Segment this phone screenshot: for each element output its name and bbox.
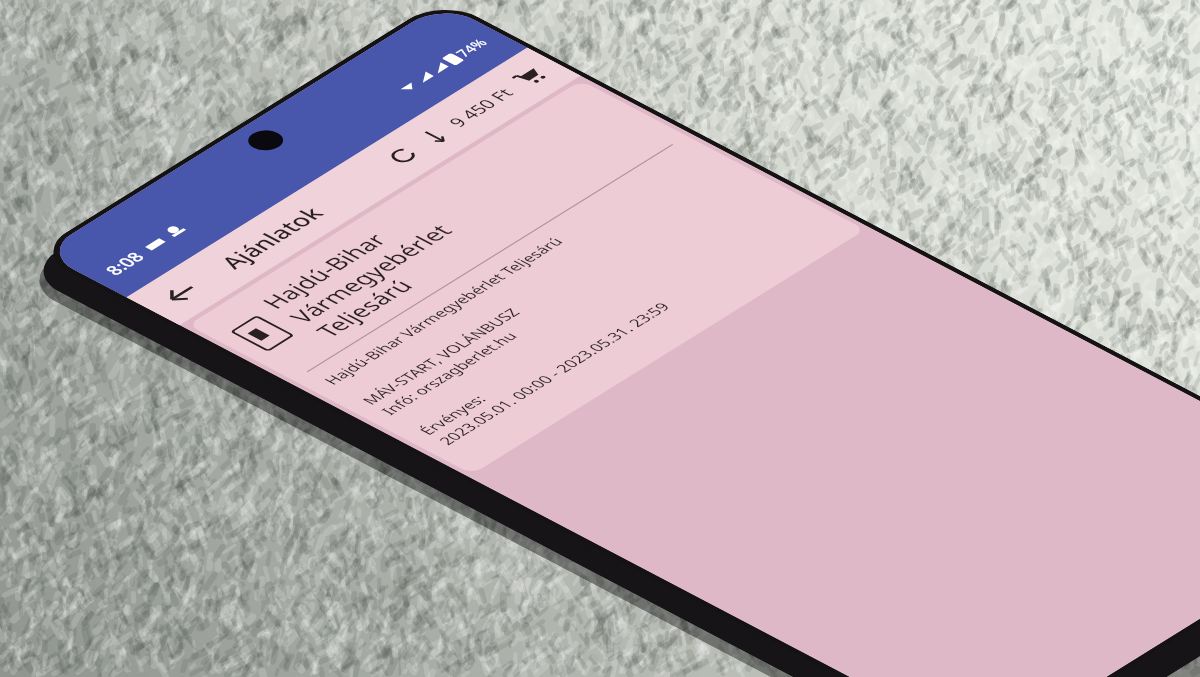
- button[interactable]: Cart: [494, 56, 564, 98]
- staticText: MÁV-START, VOLÁNBUSZ: [355, 304, 527, 408]
- button[interactable]: Refresh: [366, 134, 440, 177]
- button[interactable]: Sort: [404, 115, 470, 154]
- staticText: Ajánlatok: [212, 202, 332, 274]
- staticText: 2023.05.01. 00:00 - 2023.05.31. 23:59: [431, 299, 678, 448]
- button[interactable]: Back: [138, 268, 225, 319]
- staticText: 8:08: [98, 248, 150, 278]
- staticText: Érvényes:: [413, 391, 492, 438]
- staticText: Hajdú-Bihar Vármegyebérlet Teljesárú: [253, 204, 487, 343]
- staticText: 74%: [450, 35, 491, 60]
- staticText: Infó: orszagberlet.hu: [374, 328, 524, 418]
- button[interactable]: Hajdú-Bihar Vármegyebérlet Teljesárú: [184, 76, 869, 479]
- staticText: Hajdú-Bihar Vármegyebérlet Teljesárú: [316, 233, 571, 388]
- staticText: 9 450 Ft: [442, 84, 519, 130]
